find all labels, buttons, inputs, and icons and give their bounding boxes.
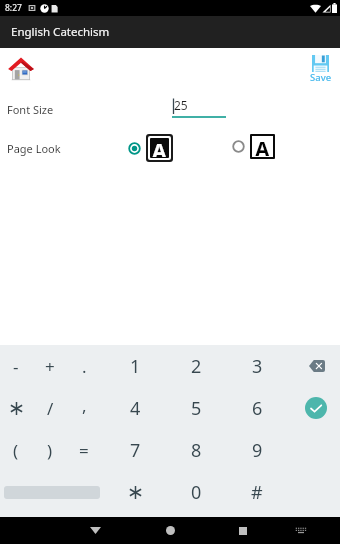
- button[interactable]: ,: [67, 387, 101, 429]
- button[interactable]: Save: [308, 55, 333, 84]
- button[interactable]: Recent apps: [228, 517, 258, 544]
- button[interactable]: Home: [7, 55, 35, 83]
- button[interactable]: (: [0, 429, 33, 471]
- button[interactable]: 2: [165, 345, 227, 387]
- button[interactable]: 5: [165, 387, 227, 429]
- button[interactable]: +: [33, 345, 67, 387]
- button[interactable]: 6: [226, 387, 288, 429]
- staticText: 9: [252, 438, 263, 463]
- staticText: Save: [310, 71, 332, 83]
- button[interactable]: 4: [104, 387, 166, 429]
- button[interactable]: 7: [104, 429, 166, 471]
- staticText: ): [47, 439, 53, 462]
- staticText: A: [152, 138, 167, 157]
- staticText: 7: [130, 438, 141, 463]
- staticText: 3: [252, 354, 263, 379]
- staticText: 25: [174, 97, 188, 113]
- button[interactable]: 25: [172, 98, 226, 118]
- button[interactable]: /: [33, 387, 67, 429]
- staticText: 8:27: [5, 2, 22, 14]
- staticText: 6: [252, 396, 263, 421]
- button[interactable]: 0: [165, 471, 227, 513]
- button[interactable]: Enter: [305, 397, 327, 419]
- staticText: 0: [191, 480, 202, 505]
- staticText: English Catechism: [11, 24, 110, 40]
- button[interactable]: A: [232, 134, 275, 159]
- button[interactable]: 9: [226, 429, 288, 471]
- staticText: A: [255, 135, 270, 156]
- staticText: 5: [191, 396, 202, 421]
- staticText: 1: [130, 354, 141, 379]
- button[interactable]: Asterisk: [104, 471, 166, 513]
- button[interactable]: 1: [104, 345, 166, 387]
- button[interactable]: =: [67, 429, 101, 471]
- button[interactable]: ): [33, 429, 67, 471]
- staticText: Page Look: [7, 141, 61, 156]
- staticText: 4: [130, 396, 141, 421]
- staticText: (: [13, 439, 19, 462]
- button[interactable]: Home: [155, 517, 185, 544]
- staticText: Font Size: [7, 102, 54, 117]
- button[interactable]: #: [226, 471, 288, 513]
- staticText: 8: [191, 438, 202, 463]
- staticText: =: [79, 439, 89, 462]
- button[interactable]: Asterisk: [0, 387, 33, 429]
- staticText: +: [45, 355, 55, 378]
- button[interactable]: 8: [165, 429, 227, 471]
- staticText: ,: [82, 394, 87, 417]
- button[interactable]: 3: [226, 345, 288, 387]
- button[interactable]: -: [0, 345, 33, 387]
- button[interactable]: .: [67, 345, 101, 387]
- staticText: .: [82, 355, 87, 378]
- button[interactable]: Back: [80, 517, 110, 544]
- staticText: #: [251, 480, 263, 505]
- staticText: -: [13, 355, 19, 378]
- staticText: 2: [191, 354, 202, 379]
- button[interactable]: A: [128, 134, 173, 162]
- button[interactable]: Backspace: [303, 345, 331, 387]
- staticText: /: [47, 397, 54, 420]
